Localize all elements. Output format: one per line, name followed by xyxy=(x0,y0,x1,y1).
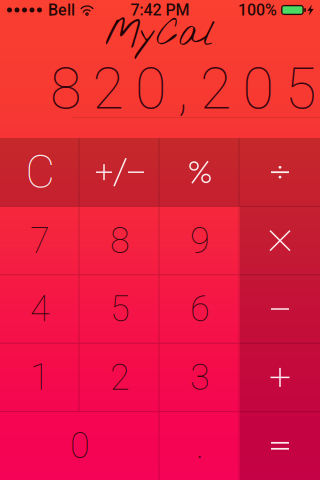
staticText: 1 xyxy=(30,356,50,398)
button[interactable]: 7 xyxy=(0,206,80,275)
staticText: Bell xyxy=(48,1,75,19)
button[interactable]: Minus xyxy=(240,275,320,343)
staticText: C xyxy=(25,146,54,199)
staticText: 3 xyxy=(190,356,210,398)
button[interactable]: Divide xyxy=(240,138,320,206)
staticText: 820,205 xyxy=(50,55,316,123)
button[interactable]: 8 xyxy=(80,206,160,275)
staticText: 0 xyxy=(70,425,90,467)
button[interactable]: 4 xyxy=(0,275,80,343)
button[interactable]: C xyxy=(0,138,80,206)
staticText: MyCal xyxy=(104,11,215,59)
button[interactable]: Plus minus xyxy=(80,138,160,206)
button[interactable]: Percent xyxy=(160,138,240,206)
button[interactable]: Plus xyxy=(240,343,320,412)
button[interactable]: Multiply xyxy=(240,206,320,275)
button[interactable]: Equals xyxy=(240,412,320,480)
button[interactable]: 6 xyxy=(160,275,240,343)
staticText: 100% xyxy=(238,1,277,19)
staticText: . xyxy=(196,425,204,467)
button[interactable]: . xyxy=(160,412,240,480)
staticText: 9 xyxy=(190,219,210,262)
button[interactable]: 2 xyxy=(80,343,160,412)
staticText: 6 xyxy=(190,288,210,330)
staticText: 7:42 PM xyxy=(130,1,189,19)
staticText: 7 xyxy=(30,219,50,262)
staticText: 8 xyxy=(110,219,130,262)
staticText: 2 xyxy=(110,356,130,398)
button[interactable]: 0 xyxy=(0,412,160,480)
button[interactable]: 5 xyxy=(80,275,160,343)
button[interactable]: 1 xyxy=(0,343,80,412)
staticText: 5 xyxy=(110,288,130,330)
staticText: 4 xyxy=(30,288,50,330)
button[interactable]: 3 xyxy=(160,343,240,412)
button[interactable]: 9 xyxy=(160,206,240,275)
